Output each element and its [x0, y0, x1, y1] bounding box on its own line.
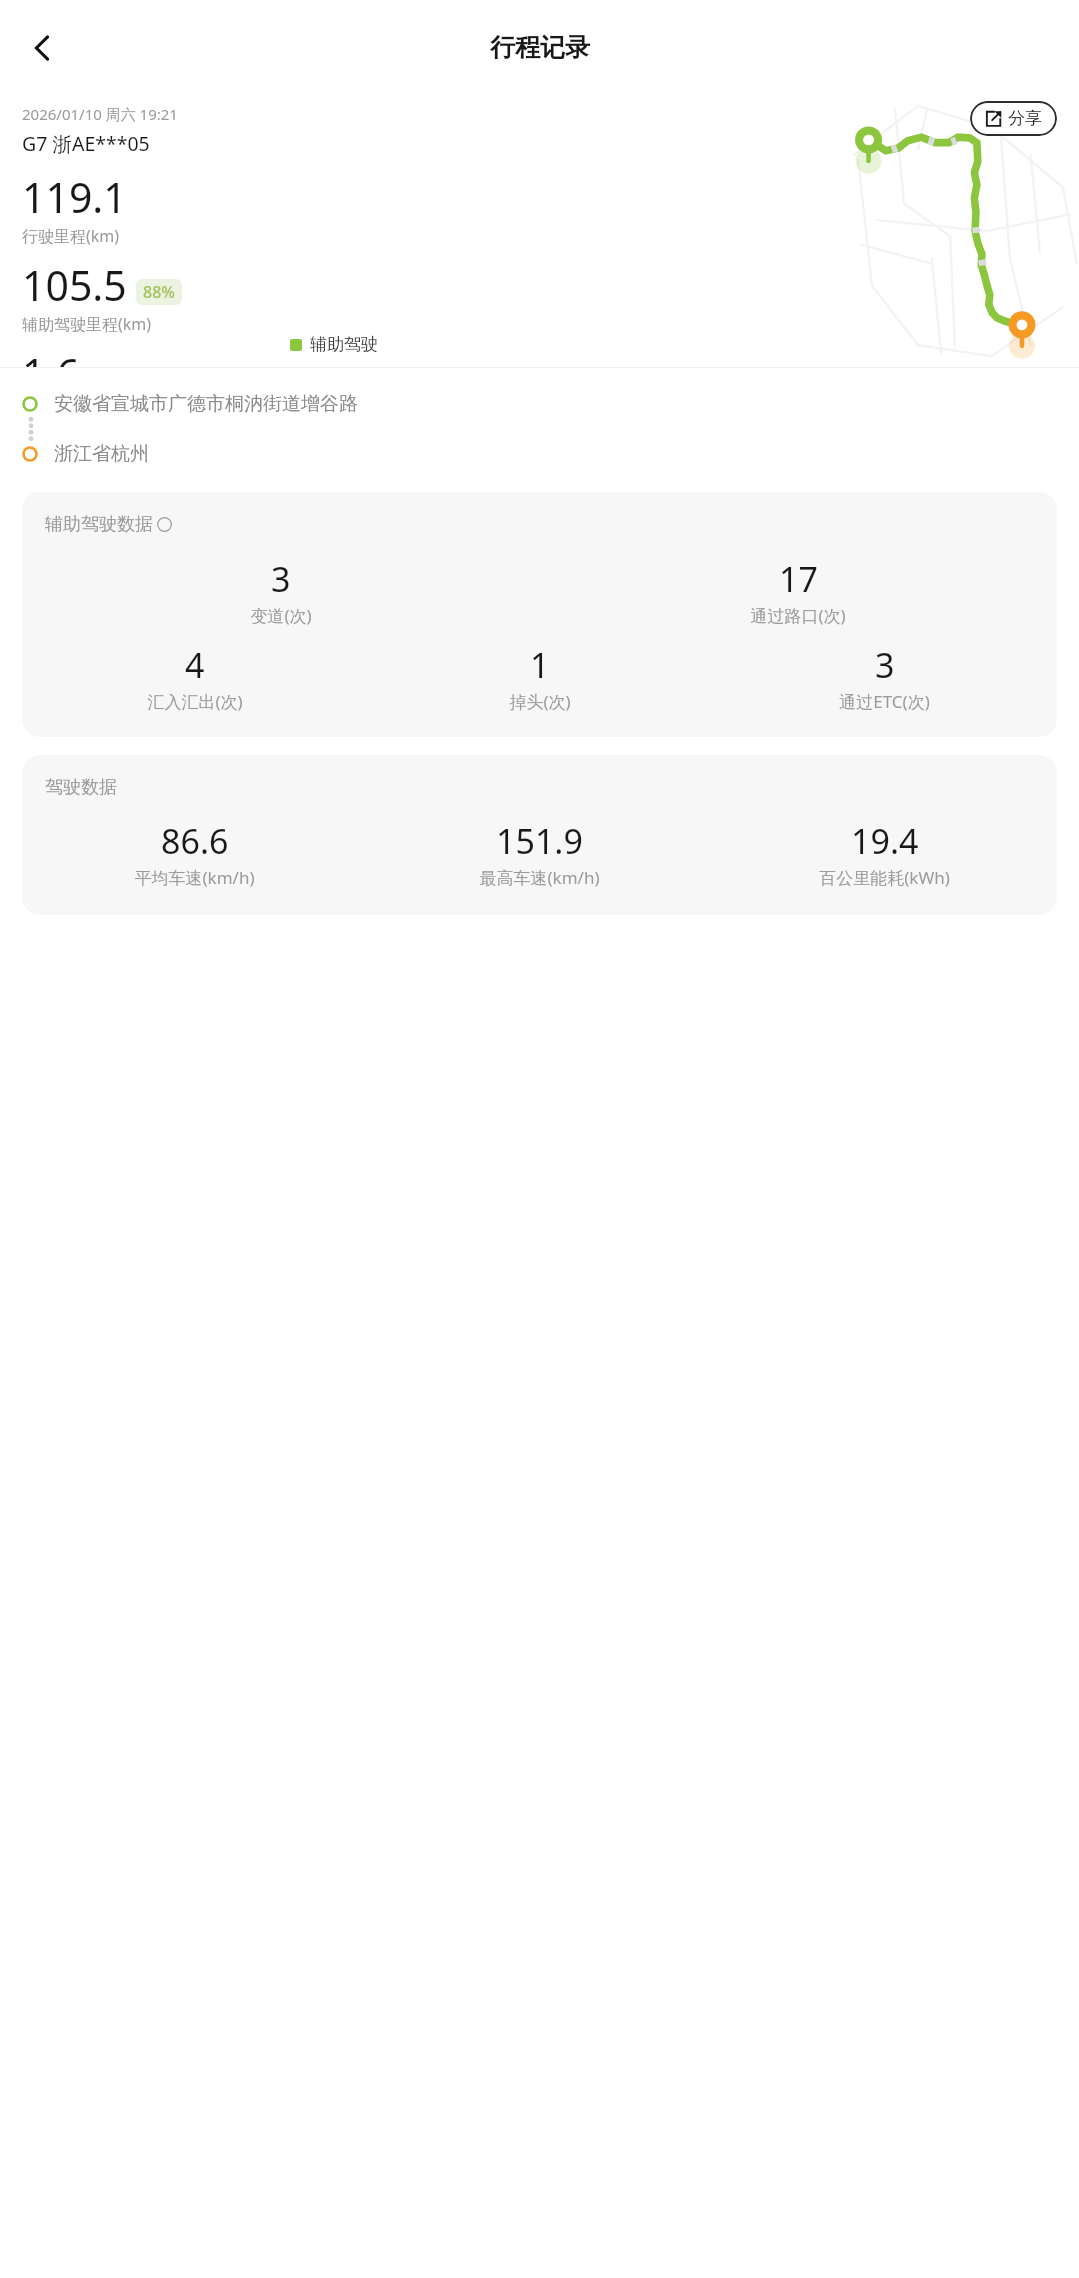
staticText: 17: [779, 556, 818, 602]
button[interactable]: 17: [539, 556, 1057, 627]
button[interactable]: 151.9: [367, 818, 712, 889]
staticText: 辅助驾驶数据: [45, 513, 153, 536]
staticText: 1: [530, 642, 550, 688]
staticText: 19.4: [851, 818, 919, 864]
button[interactable]: 安徽省宣城市广德市桐汭街道增谷路: [22, 392, 358, 416]
staticText: 平均车速(km/h): [134, 866, 255, 889]
staticText: 变道(次): [250, 604, 312, 627]
staticText: 86.6: [161, 818, 229, 864]
staticText: 通过ETC(次): [839, 690, 930, 713]
staticText: 通过路口(次): [750, 604, 846, 627]
button[interactable]: 浙江省杭州: [22, 442, 149, 466]
staticText: 分享: [1008, 108, 1042, 129]
staticText: 掉头(次): [509, 690, 571, 713]
button[interactable]: 1: [367, 642, 712, 713]
staticText: 4: [185, 642, 205, 688]
staticText: 百公里能耗(kWh): [819, 866, 950, 889]
staticText: 行驶里程(km): [22, 225, 120, 247]
button[interactable]: 分享: [970, 101, 1057, 136]
staticText: 2026/01/10 周六 19:21: [22, 104, 178, 124]
staticText: 88%: [143, 281, 175, 303]
button[interactable]: Back: [12, 18, 72, 78]
button[interactable]: 4: [22, 642, 367, 713]
staticText: 行程记录: [490, 32, 590, 63]
staticText: 3: [875, 642, 895, 688]
staticText: 驾驶数据: [45, 776, 117, 799]
staticText: 119.1: [22, 169, 127, 225]
staticText: 最高车速(km/h): [479, 866, 600, 889]
staticText: 105.5: [22, 257, 127, 313]
staticText: 安徽省宣城市广德市桐汭街道增谷路: [54, 392, 358, 416]
staticText: 3: [271, 556, 291, 602]
staticText: 1.6: [22, 345, 80, 367]
staticText: 浙江省杭州: [54, 442, 149, 466]
button[interactable]: Help: [157, 517, 172, 532]
staticText: 辅助驾驶里程(km): [22, 313, 152, 335]
button[interactable]: 19.4: [712, 818, 1057, 889]
staticText: 汇入汇出(次): [147, 690, 243, 713]
staticText: 辅助驾驶: [310, 334, 378, 355]
staticText: 151.9: [496, 818, 583, 864]
button[interactable]: 3: [22, 556, 539, 627]
staticText: G7 浙AE***05: [22, 130, 150, 157]
button[interactable]: 3: [712, 642, 1057, 713]
button[interactable]: 86.6: [22, 818, 367, 889]
